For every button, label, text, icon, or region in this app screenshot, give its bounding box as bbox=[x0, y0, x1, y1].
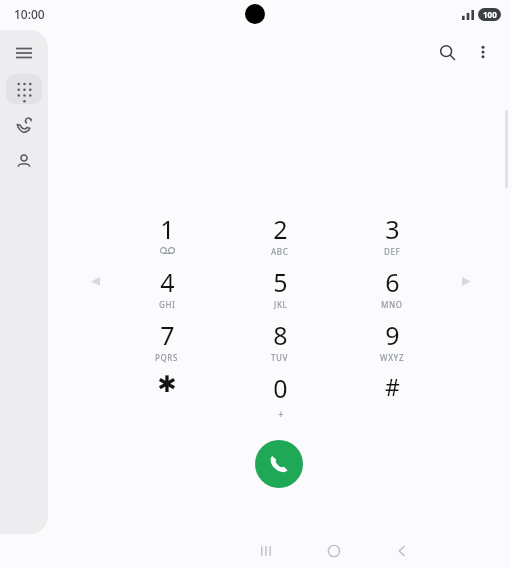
staticText: MNO bbox=[381, 299, 403, 310]
staticText: 5 bbox=[273, 265, 288, 299]
staticText: DEF bbox=[384, 246, 401, 257]
button[interactable]: 3 bbox=[357, 212, 427, 264]
staticText: 6 bbox=[385, 265, 400, 299]
button[interactable]: 8 bbox=[245, 318, 315, 370]
button[interactable]: Previous page bbox=[86, 272, 104, 290]
staticText: 0 bbox=[273, 371, 288, 405]
staticText: 1 bbox=[160, 212, 175, 246]
staticText: 2 bbox=[273, 212, 288, 246]
staticText: JKL bbox=[274, 299, 288, 310]
staticText: 9 bbox=[385, 318, 400, 352]
button[interactable]: 9 bbox=[357, 318, 427, 370]
button[interactable]: Recent apps bbox=[250, 535, 282, 567]
button[interactable]: Menu bbox=[6, 38, 42, 68]
button[interactable]: Keypad bbox=[6, 74, 42, 104]
staticText: ABC bbox=[271, 246, 289, 257]
staticText: # bbox=[385, 371, 400, 402]
button[interactable]: Call bbox=[255, 440, 303, 488]
staticText: 4 bbox=[160, 265, 175, 299]
staticText: 7 bbox=[160, 318, 175, 352]
staticText: 8 bbox=[273, 318, 288, 352]
staticText: 100 bbox=[483, 9, 497, 20]
button[interactable]: More options bbox=[465, 34, 501, 70]
staticText: ✱ bbox=[157, 371, 177, 398]
staticText: GHI bbox=[159, 299, 176, 310]
staticText: 3 bbox=[385, 212, 400, 246]
button[interactable]: 7 bbox=[132, 318, 202, 370]
button[interactable]: 4 bbox=[132, 265, 202, 317]
staticText: TUV bbox=[271, 352, 289, 363]
button[interactable]: 1 bbox=[132, 212, 202, 264]
button[interactable]: 5 bbox=[245, 265, 315, 317]
button[interactable]: ✱ bbox=[132, 371, 202, 423]
button[interactable]: 6 bbox=[357, 265, 427, 317]
staticText: PQRS bbox=[155, 352, 179, 363]
button[interactable]: Back bbox=[386, 535, 418, 567]
button[interactable]: Recents bbox=[6, 110, 42, 140]
button[interactable]: 2 bbox=[245, 212, 315, 264]
button[interactable]: Home bbox=[318, 535, 350, 567]
button[interactable]: # bbox=[357, 371, 427, 423]
button[interactable]: Next page bbox=[457, 272, 475, 290]
button[interactable]: Contacts bbox=[6, 146, 42, 176]
staticText: 10:00 bbox=[14, 6, 45, 22]
staticText: WXYZ bbox=[380, 352, 405, 363]
staticText: + bbox=[278, 407, 284, 421]
button[interactable]: 0 bbox=[245, 371, 315, 423]
button[interactable]: Search bbox=[429, 34, 465, 70]
